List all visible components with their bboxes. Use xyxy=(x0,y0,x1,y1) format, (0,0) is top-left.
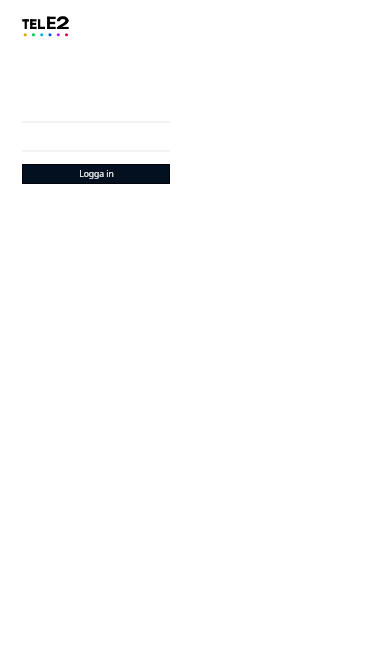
button[interactable]: Losenord xyxy=(22,129,170,152)
button[interactable]: Logga in xyxy=(23,165,169,183)
staticText: Logga in xyxy=(79,168,114,180)
button[interactable]: Anvandarnamn xyxy=(22,100,170,123)
